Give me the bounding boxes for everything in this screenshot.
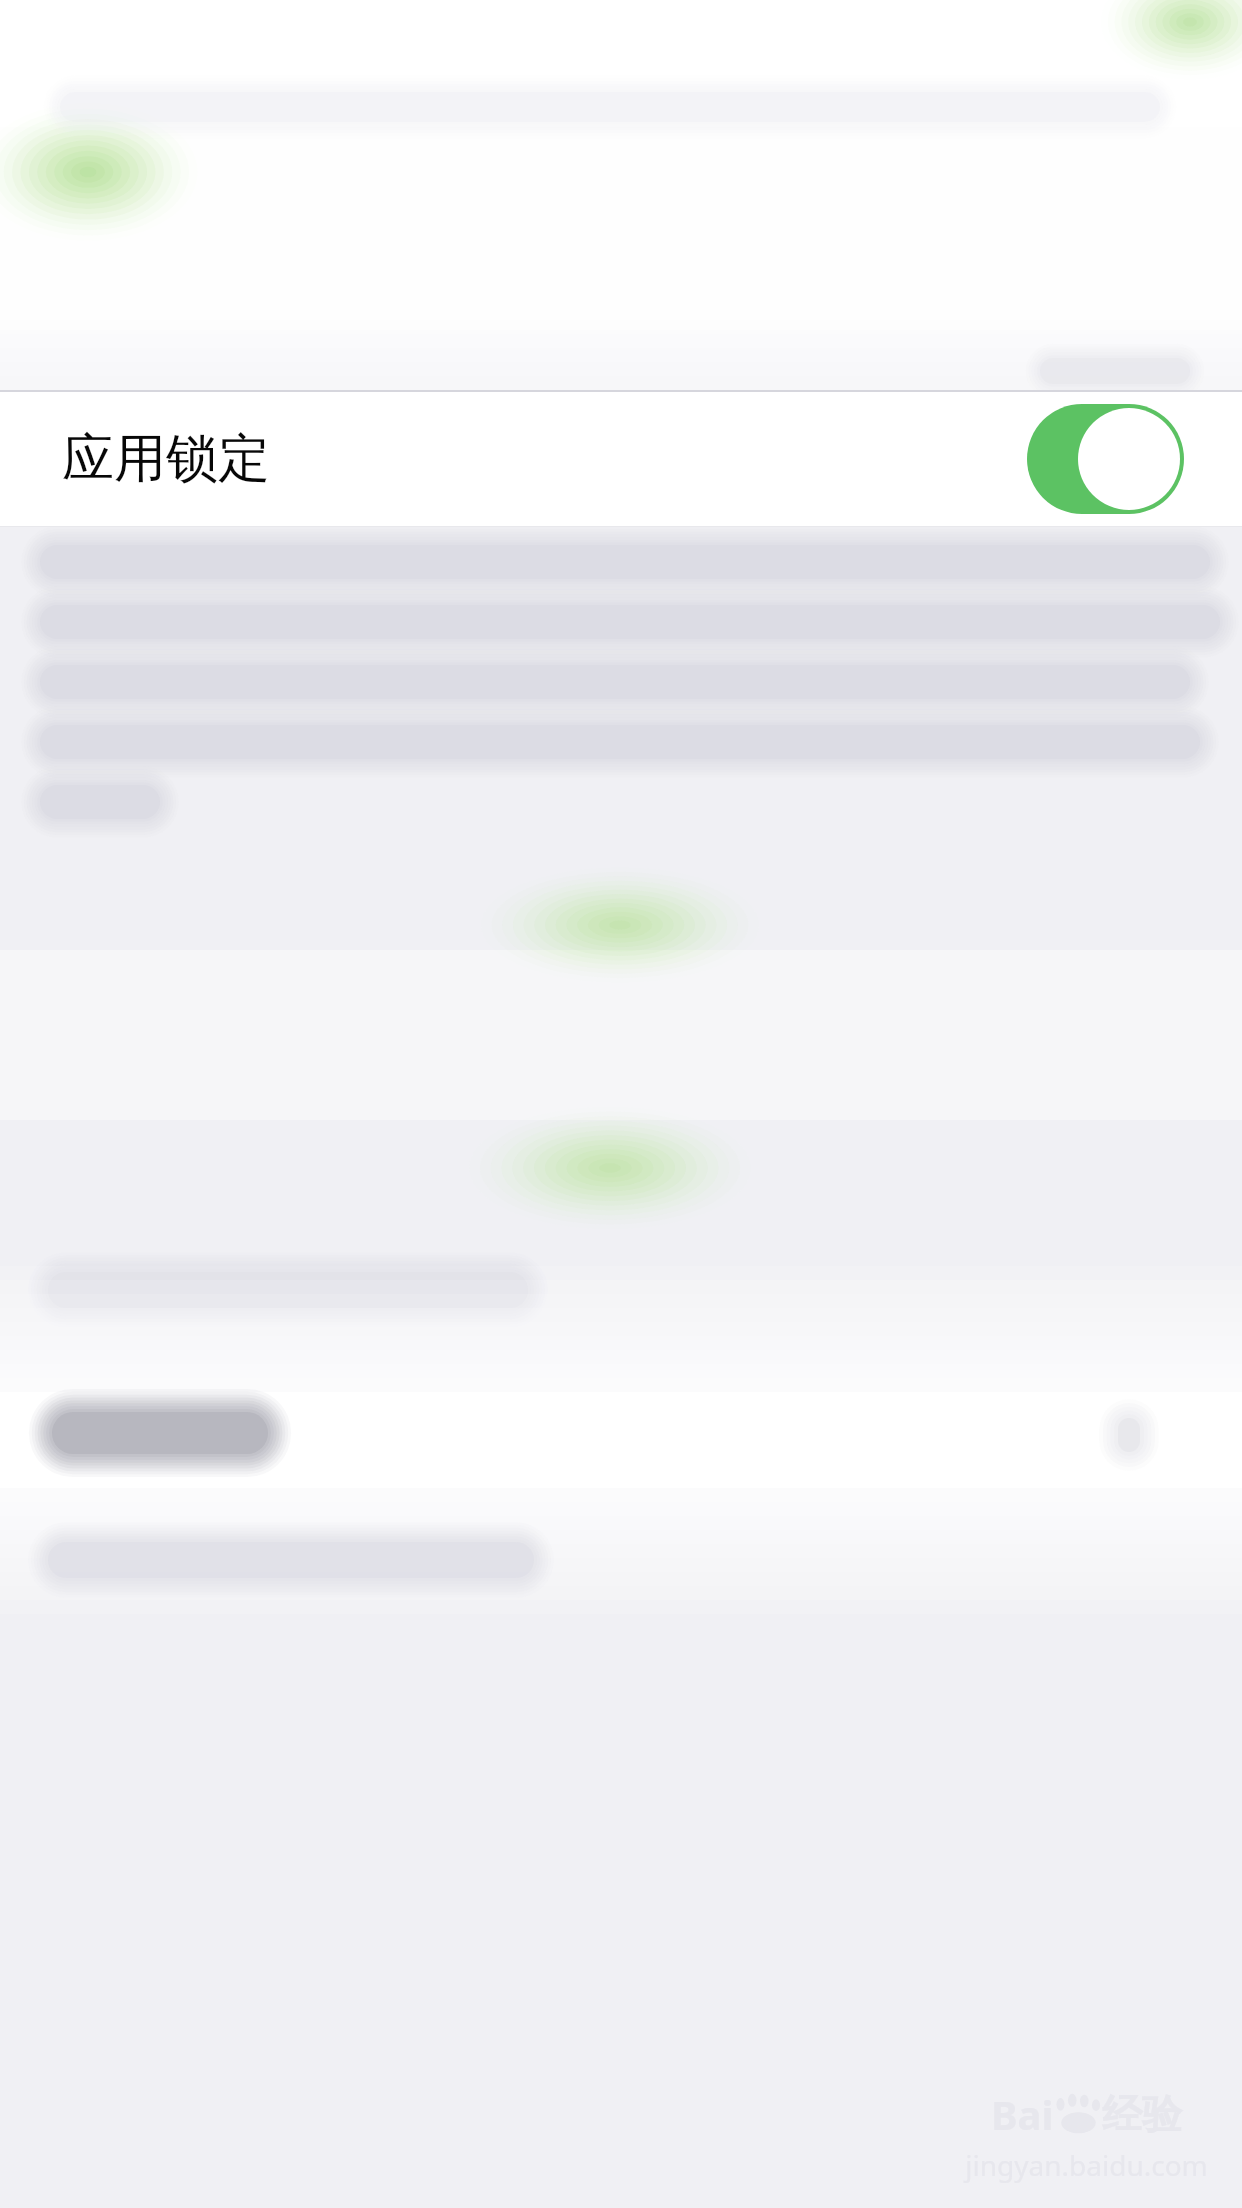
- staticText: jingyan.baidu.com: [965, 2146, 1208, 2184]
- staticText: 经验: [1102, 2089, 1182, 2139]
- staticText: 应用锁定: [62, 426, 270, 492]
- staticText: Bai: [991, 2087, 1054, 2141]
- button[interactable]: 应用锁定 开关，已开启: [1027, 404, 1184, 514]
- button[interactable]: 应用锁定: [0, 390, 1242, 527]
